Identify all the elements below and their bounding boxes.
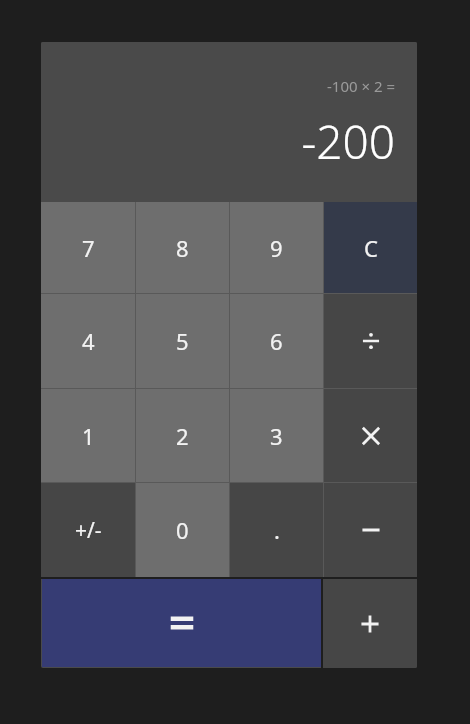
staticText: 4	[82, 326, 95, 356]
staticText: .	[274, 515, 280, 545]
button[interactable]: +/-	[41, 483, 135, 577]
button[interactable]: Multiply	[324, 389, 417, 482]
staticText: 9	[270, 233, 283, 263]
button[interactable]: 8	[136, 202, 229, 293]
button[interactable]: 2	[136, 389, 229, 482]
button[interactable]: 0	[136, 483, 229, 577]
button[interactable]: 1	[41, 389, 135, 482]
button[interactable]: .	[230, 483, 323, 577]
staticText: 3	[270, 421, 283, 451]
staticText: 5	[176, 326, 189, 356]
staticText: +/-	[75, 516, 102, 545]
staticText: -100 × 2 =	[326, 76, 395, 96]
staticText: C	[364, 233, 378, 263]
button[interactable]: Add	[323, 579, 417, 668]
button[interactable]: 3	[230, 389, 323, 482]
button[interactable]: Divide	[324, 294, 417, 388]
button[interactable]: 7	[41, 202, 135, 293]
staticText: 2	[176, 421, 189, 451]
button[interactable]: Subtract	[324, 483, 417, 577]
button[interactable]: 6	[230, 294, 323, 388]
staticText: 0	[176, 515, 189, 545]
staticText: 8	[176, 233, 189, 263]
button[interactable]: C	[324, 202, 417, 293]
button[interactable]: 4	[41, 294, 135, 388]
staticText: -200	[301, 110, 395, 173]
staticText: 6	[270, 326, 283, 356]
button[interactable]: 5	[136, 294, 229, 388]
button[interactable]: 9	[230, 202, 323, 293]
button[interactable]: Equals	[42, 579, 321, 667]
staticText: 7	[82, 233, 95, 263]
staticText: 1	[82, 421, 95, 451]
